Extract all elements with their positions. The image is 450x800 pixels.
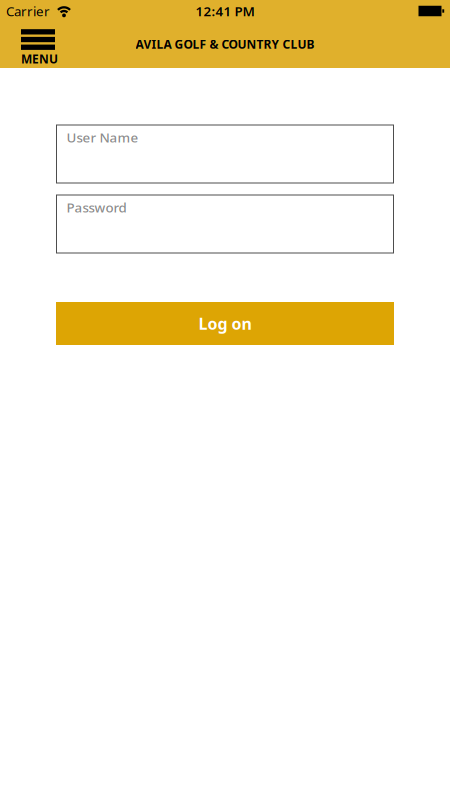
staticText: Carrier [6, 2, 50, 20]
staticText: User Name [66, 128, 138, 146]
staticText: Log on [198, 313, 251, 334]
button[interactable]: User Name [56, 125, 393, 183]
staticText: MENU [21, 51, 58, 67]
staticText: 12:41 PM [195, 2, 254, 20]
staticText: Password [66, 198, 126, 216]
button[interactable]: Menu [0, 23, 58, 67]
staticText: AVILA GOLF & COUNTRY CLUB [135, 36, 314, 52]
button[interactable]: Log on [56, 302, 394, 345]
button[interactable]: Password [56, 195, 393, 253]
